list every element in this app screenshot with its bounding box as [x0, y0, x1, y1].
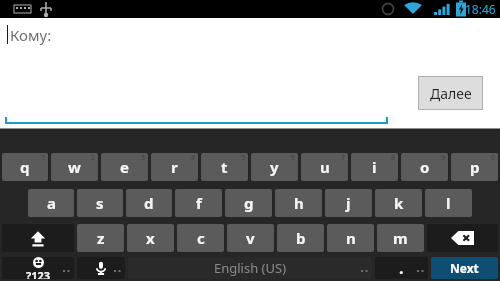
- button[interactable]: k: [375, 189, 422, 217]
- button[interactable]: English (US): [128, 257, 372, 279]
- staticText: u: [320, 157, 330, 177]
- button[interactable]: h: [275, 189, 322, 217]
- button[interactable]: Shift: [2, 224, 74, 252]
- button[interactable]: o: [401, 153, 448, 181]
- staticText: o: [420, 157, 430, 177]
- staticText: c: [197, 228, 205, 248]
- staticText: n: [346, 228, 356, 248]
- staticText: z: [97, 228, 105, 248]
- button[interactable]: Next: [431, 257, 498, 279]
- staticText: i: [372, 157, 377, 177]
- staticText: t: [221, 157, 228, 177]
- button[interactable]: s: [77, 189, 123, 217]
- staticText: e: [120, 157, 129, 177]
- staticText: r: [171, 157, 178, 177]
- button[interactable]: i: [351, 153, 398, 181]
- staticText: x: [146, 228, 155, 248]
- button[interactable]: x: [127, 224, 174, 252]
- staticText: a: [47, 193, 56, 213]
- button[interactable]: c: [177, 224, 224, 252]
- staticText: ?123: [26, 268, 51, 279]
- staticText: 18:46: [465, 1, 496, 17]
- staticText: 1: [41, 153, 46, 163]
- staticText: f: [196, 193, 202, 213]
- button[interactable]: y: [251, 153, 298, 181]
- button[interactable]: e: [101, 153, 148, 181]
- staticText: 0: [491, 153, 496, 163]
- button[interactable]: Backspace: [427, 224, 498, 252]
- button[interactable]: z: [77, 224, 124, 252]
- staticText: 3: [141, 153, 146, 163]
- staticText: Далее: [430, 84, 472, 103]
- staticText: 9: [441, 153, 446, 163]
- staticText: 6: [291, 153, 296, 163]
- button[interactable]: .: [375, 257, 428, 279]
- button[interactable]: v: [227, 224, 274, 252]
- staticText: g: [244, 193, 254, 213]
- button[interactable]: j: [325, 189, 372, 217]
- button[interactable]: ?123: [2, 257, 74, 279]
- button[interactable]: l: [425, 189, 472, 217]
- button[interactable]: u: [301, 153, 348, 181]
- staticText: j: [346, 193, 351, 213]
- staticText: English (US): [214, 259, 287, 277]
- staticText: Next: [450, 260, 479, 276]
- staticText: 5: [241, 153, 246, 163]
- staticText: s: [96, 193, 104, 213]
- staticText: 7: [341, 153, 346, 163]
- button[interactable]: t: [201, 153, 248, 181]
- button[interactable]: p: [451, 153, 498, 181]
- button[interactable]: a: [28, 189, 74, 217]
- button[interactable]: f: [175, 189, 222, 217]
- button[interactable]: d: [126, 189, 172, 217]
- staticText: .: [399, 257, 404, 279]
- button[interactable]: b: [277, 224, 324, 252]
- staticText: y: [270, 157, 279, 177]
- button[interactable]: Далее: [419, 77, 482, 109]
- staticText: p: [470, 157, 480, 177]
- button[interactable]: Voice input: [77, 257, 125, 279]
- staticText: q: [20, 157, 30, 177]
- staticText: w: [68, 157, 81, 177]
- staticText: 4: [191, 153, 196, 163]
- staticText: h: [294, 193, 304, 213]
- button[interactable]: m: [377, 224, 424, 252]
- staticText: v: [246, 228, 255, 248]
- staticText: k: [394, 193, 404, 213]
- staticText: m: [393, 228, 408, 248]
- button[interactable]: w: [51, 153, 98, 181]
- button[interactable]: r: [151, 153, 198, 181]
- staticText: 8: [391, 153, 396, 163]
- button[interactable]: q: [2, 153, 48, 181]
- button[interactable]: g: [225, 189, 272, 217]
- button[interactable]: n: [327, 224, 374, 252]
- staticText: l: [446, 193, 451, 213]
- staticText: b: [296, 228, 306, 248]
- staticText: 2: [91, 153, 96, 163]
- staticText: d: [144, 193, 154, 213]
- staticText: Кому:: [10, 25, 52, 45]
